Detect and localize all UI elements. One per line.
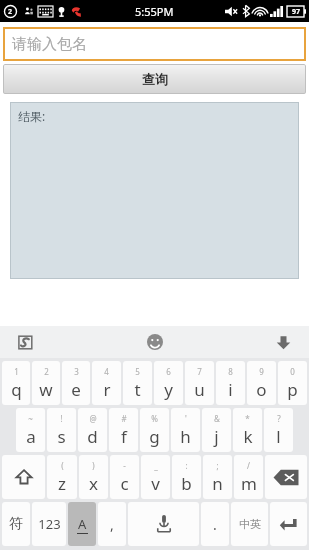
staticText: ! (60, 413, 63, 424)
button[interactable]: & (202, 408, 231, 452)
staticText: ) (92, 460, 95, 471)
button[interactable]: ? (264, 408, 293, 452)
staticText: 123 (38, 515, 61, 533)
button[interactable]: Shift (2, 455, 45, 499)
button[interactable]: 中英 (231, 502, 268, 546)
button[interactable]: 7 (185, 361, 214, 405)
staticText: @ (89, 413, 97, 424)
button[interactable]: ! (47, 408, 76, 452)
staticText: 请输入包名 (12, 35, 87, 54)
button[interactable]: 6 (154, 361, 183, 405)
staticText: ~ (28, 413, 33, 424)
staticText: ( (61, 460, 64, 471)
button[interactable]: , (98, 502, 126, 546)
staticText: 5:55PM (135, 4, 174, 19)
button[interactable]: / (234, 455, 263, 499)
button[interactable]: 0 (278, 361, 307, 405)
staticText: n (212, 472, 223, 495)
button[interactable]: - (110, 455, 139, 499)
button[interactable]: 123 (32, 502, 66, 546)
button[interactable]: ) (79, 455, 108, 499)
button[interactable]: @ (78, 408, 107, 452)
staticText: 1 (14, 366, 19, 377)
staticText: x (89, 472, 98, 495)
staticText: v (151, 472, 160, 495)
button[interactable]: 请输入包名 (3, 27, 306, 61)
button[interactable]: Letters (68, 502, 96, 546)
button[interactable]: Enter (270, 502, 307, 546)
button[interactable]: % (140, 408, 169, 452)
staticText: m (241, 472, 257, 495)
staticText: 8 (228, 366, 233, 377)
staticText: b (181, 472, 192, 495)
staticText: 2 (8, 7, 13, 17)
button[interactable]: ( (47, 455, 77, 499)
staticText: u (194, 378, 205, 401)
staticText: l (276, 425, 281, 448)
staticText: 7 (197, 366, 202, 377)
staticText: y (164, 378, 173, 401)
staticText: 97 (292, 7, 301, 17)
staticText: % (151, 413, 158, 424)
staticText: w (39, 378, 53, 401)
staticText: A (78, 515, 87, 533)
staticText: 结果: (18, 108, 46, 124)
staticText: 4 (104, 366, 109, 377)
staticText: 查询 (142, 71, 168, 87)
staticText: / (247, 460, 250, 471)
staticText: q (11, 378, 22, 401)
staticText: 2 (44, 366, 49, 377)
button[interactable]: 5 (123, 361, 152, 405)
staticText: e (71, 378, 81, 401)
staticText: r (103, 378, 111, 401)
button[interactable]: 查询 (3, 64, 306, 94)
button[interactable]: 9 (247, 361, 276, 405)
staticText: g (149, 425, 160, 448)
staticText: p (287, 378, 298, 401)
button[interactable]: ~ (16, 408, 45, 452)
staticText: - (123, 460, 126, 471)
button[interactable]: 1 (2, 361, 30, 405)
button[interactable]: # (109, 408, 138, 452)
button[interactable]: Hide keyboard (271, 330, 295, 354)
button[interactable]: Space (128, 502, 199, 546)
button[interactable]: ; (203, 455, 232, 499)
button[interactable]: : (172, 455, 201, 499)
staticText: . (213, 515, 217, 534)
button[interactable]: 3 (62, 361, 90, 405)
staticText: j (214, 425, 219, 448)
staticText: a (26, 425, 36, 448)
staticText: 6 (166, 366, 171, 377)
staticText: k (243, 425, 253, 448)
staticText: d (87, 425, 98, 448)
staticText: t (134, 378, 141, 401)
staticText: ; (216, 460, 219, 471)
button[interactable]: 2 (32, 361, 60, 405)
button[interactable]: 8 (216, 361, 245, 405)
staticText: * (245, 413, 250, 424)
button[interactable]: . (201, 502, 229, 546)
staticText: 中英 (239, 517, 261, 531)
button[interactable]: _ (141, 455, 170, 499)
staticText: i (228, 378, 233, 401)
staticText: _ (154, 460, 158, 471)
staticText: z (58, 472, 66, 495)
button[interactable]: 符 (2, 502, 30, 546)
staticText: & (214, 413, 220, 424)
staticText: 3 (74, 366, 79, 377)
button[interactable]: ' (171, 408, 200, 452)
staticText: 9 (259, 366, 264, 377)
button[interactable]: * (233, 408, 262, 452)
staticText: f (121, 425, 127, 448)
staticText: o (256, 378, 267, 401)
staticText: # (121, 413, 127, 424)
staticText: s (57, 425, 66, 448)
staticText: 符 (9, 515, 23, 533)
staticText: , (110, 515, 114, 534)
button[interactable]: Emoji (143, 330, 167, 354)
staticText: ? (277, 413, 281, 424)
button[interactable]: Input method (14, 331, 36, 353)
staticText: : (185, 460, 188, 471)
button[interactable]: 4 (92, 361, 121, 405)
button[interactable]: Backspace (265, 455, 307, 499)
